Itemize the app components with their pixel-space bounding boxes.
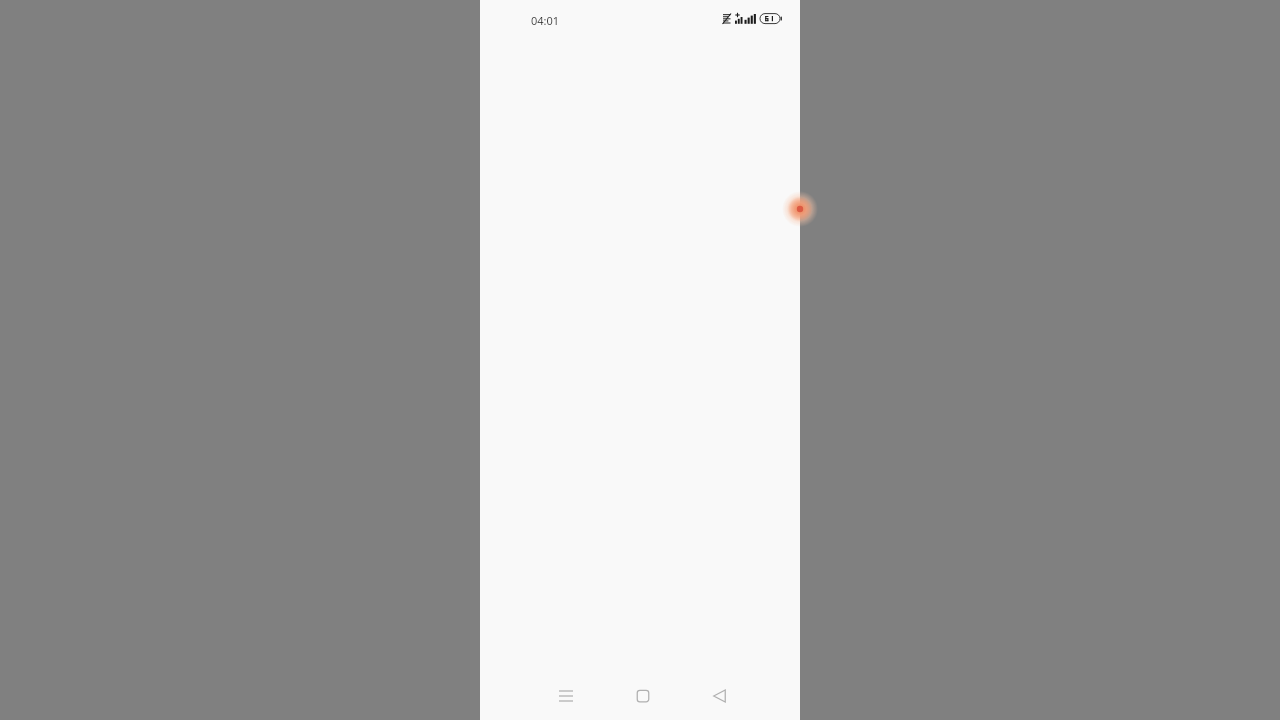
button[interactable]: Floating assistant bubble <box>781 191 800 227</box>
button[interactable]: Recent apps <box>542 676 590 716</box>
button[interactable]: Home <box>619 676 667 716</box>
button[interactable]: Back <box>696 676 744 716</box>
staticText: 04:01 <box>531 13 560 28</box>
